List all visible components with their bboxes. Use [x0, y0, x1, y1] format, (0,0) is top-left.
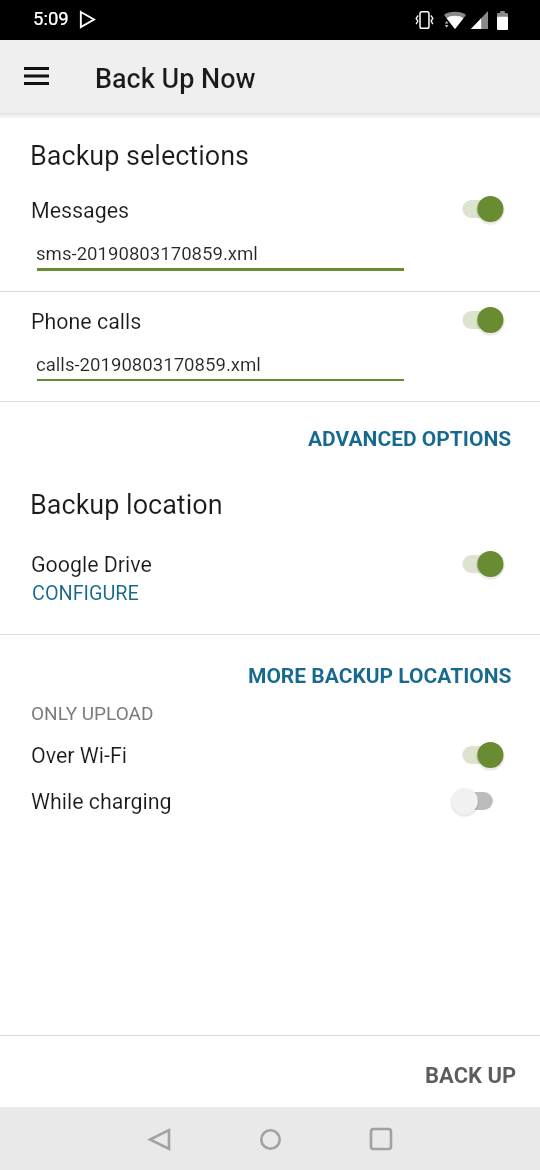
button[interactable]: Toggle on — [448, 186, 508, 232]
staticText: Backup selections — [30, 140, 249, 172]
staticText: Phone calls — [31, 309, 142, 334]
staticText: Backup location — [30, 489, 223, 521]
button[interactable]: Back — [135, 1115, 183, 1163]
button[interactable]: While charging — [0, 779, 540, 825]
button[interactable]: MORE BACKUP LOCATIONS — [233, 655, 527, 698]
staticText: Google Drive — [31, 552, 152, 577]
staticText: calls-20190803170859.xml — [36, 354, 261, 376]
button[interactable]: Home — [246, 1115, 294, 1163]
button[interactable]: Recent apps — [357, 1115, 405, 1163]
staticText: MORE BACKUP LOCATIONS — [248, 664, 512, 689]
staticText: ADVANCED OPTIONS — [308, 427, 512, 452]
staticText: sms-20190803170859.xml — [36, 243, 258, 265]
button[interactable]: Navigation menu — [12, 52, 60, 100]
staticText: Messages — [31, 198, 130, 223]
button[interactable]: Toggle on — [448, 732, 508, 778]
staticText: While charging — [31, 789, 172, 814]
staticText: BACK UP — [425, 1063, 517, 1089]
button[interactable]: ADVANCED OPTIONS — [293, 418, 527, 461]
button[interactable]: CONFIGURE — [32, 582, 139, 605]
button[interactable]: Over Wi-Fi — [0, 733, 540, 779]
button[interactable]: Toggle on — [448, 541, 508, 587]
button[interactable]: Toggle off — [448, 778, 508, 824]
staticText: Over Wi-Fi — [31, 743, 127, 768]
staticText: CONFIGURE — [32, 582, 139, 605]
button[interactable]: Toggle on — [448, 297, 508, 343]
staticText: ONLY UPLOAD — [31, 702, 154, 724]
staticText: 5:09 — [33, 8, 69, 30]
staticText: Back Up Now — [95, 63, 256, 95]
button[interactable]: BACK UP — [410, 1053, 532, 1099]
